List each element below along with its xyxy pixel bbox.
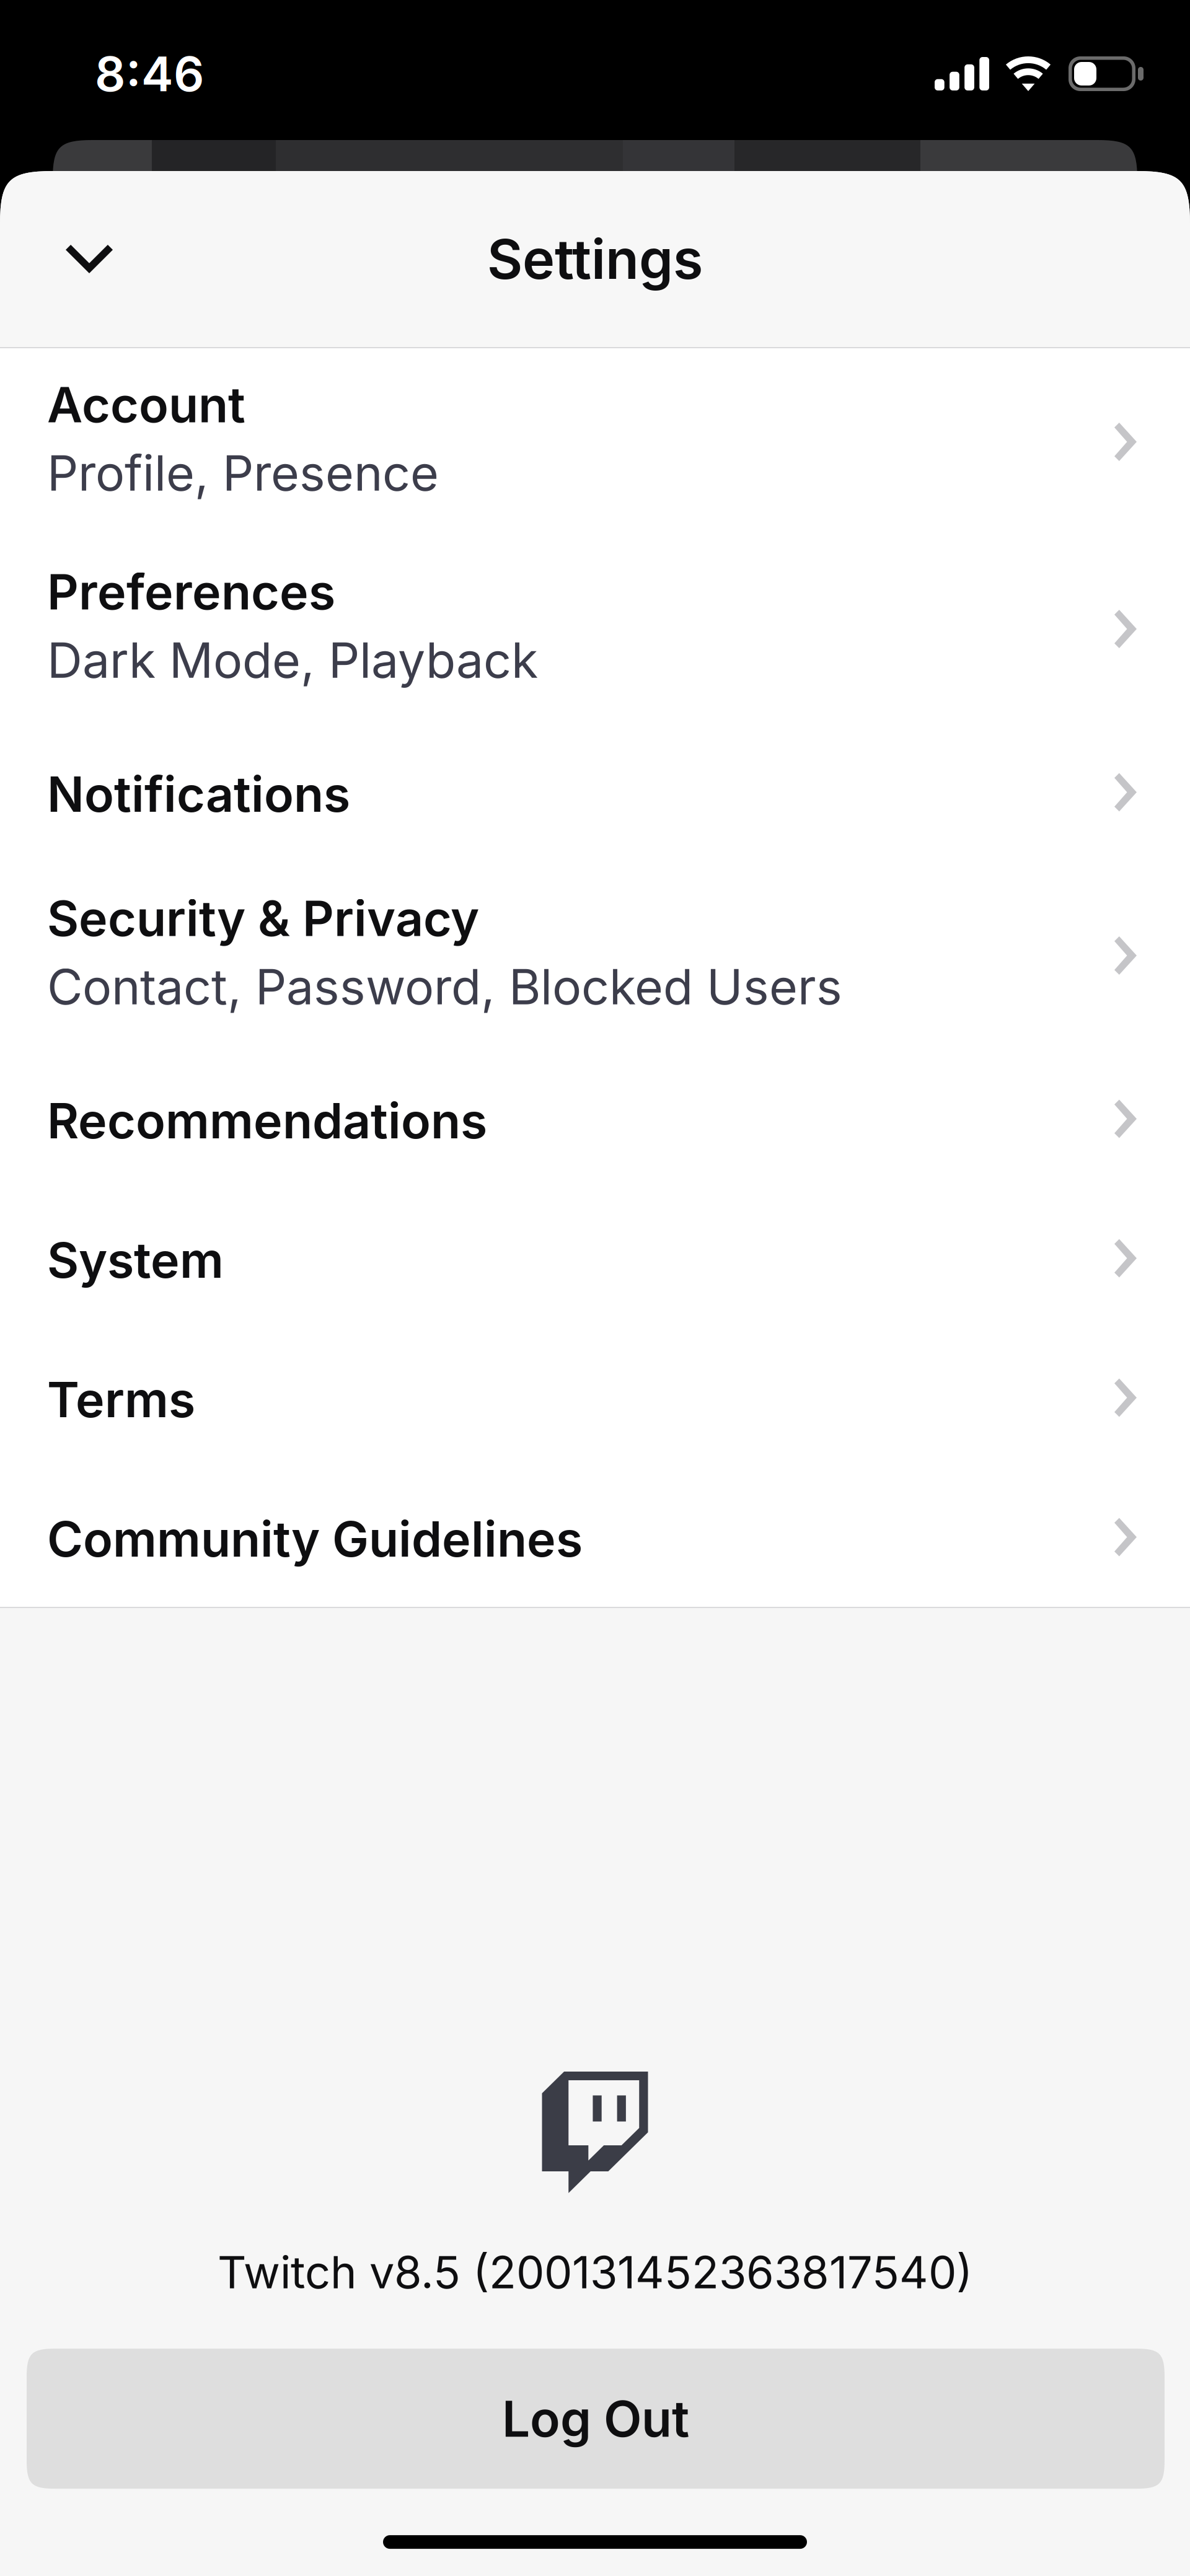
staticText: Contact, Password, Blocked Users: [47, 957, 842, 1016]
staticText: Recommendations: [47, 1091, 487, 1150]
staticText: 8:46: [95, 45, 204, 103]
staticText: Community Guidelines: [47, 1509, 583, 1568]
button[interactable]: Log Out: [27, 2349, 1165, 2489]
staticText: System: [47, 1231, 224, 1290]
staticText: Twitch v8.5 (200131452363817540): [218, 2245, 972, 2299]
button[interactable]: System: [0, 1189, 1190, 1328]
button[interactable]: Account: [0, 348, 1190, 535]
staticText: Dark Mode, Playback: [47, 631, 538, 690]
button[interactable]: Security & Privacy: [0, 862, 1190, 1049]
staticText: Terms: [47, 1370, 195, 1429]
button[interactable]: Community Guidelines: [0, 1467, 1190, 1607]
staticText: Security & Privacy: [47, 889, 479, 948]
staticText: Settings: [487, 226, 703, 292]
button[interactable]: Recommendations: [0, 1049, 1190, 1189]
staticText: Preferences: [47, 562, 335, 621]
button[interactable]: Close: [37, 206, 142, 312]
staticText: Profile, Presence: [47, 443, 439, 502]
staticText: Account: [47, 375, 245, 434]
staticText: Notifications: [47, 765, 350, 824]
button[interactable]: Preferences: [0, 535, 1190, 723]
button[interactable]: Notifications: [0, 723, 1190, 862]
staticText: Log Out: [502, 2389, 689, 2449]
button[interactable]: Terms: [0, 1328, 1190, 1467]
